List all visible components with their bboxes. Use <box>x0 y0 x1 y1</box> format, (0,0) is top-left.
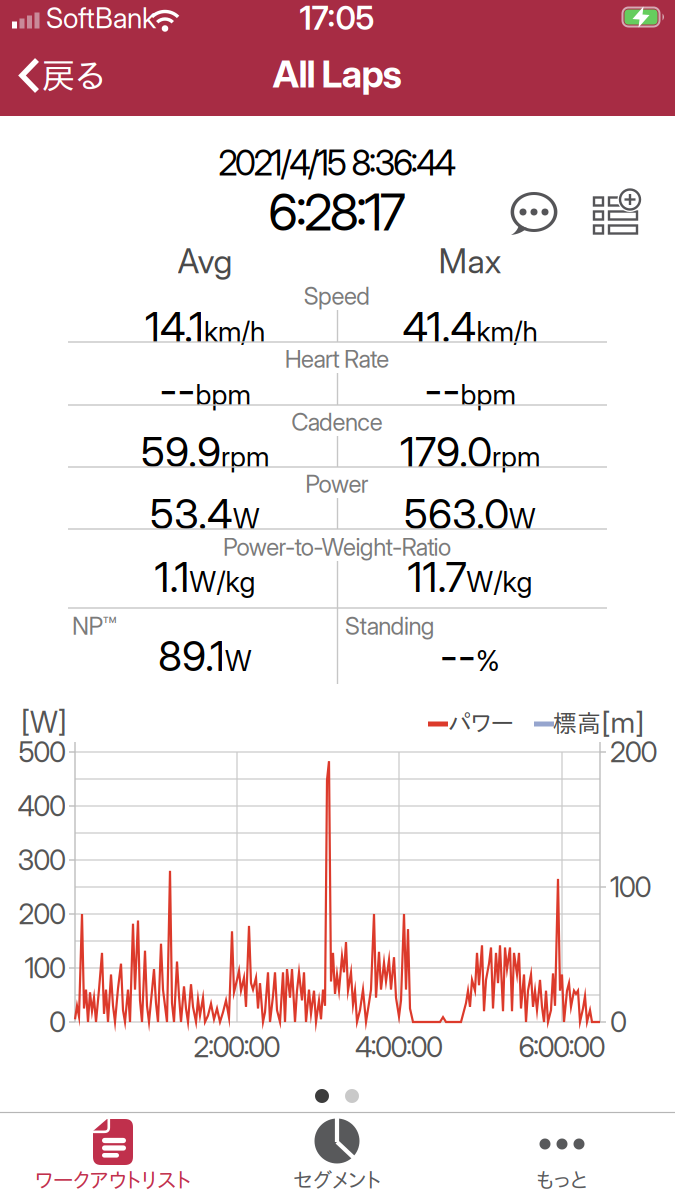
staticText: 標高 <box>553 711 601 735</box>
staticText: Avg <box>177 241 232 281</box>
staticText: 4:00:00 <box>355 1030 443 1063</box>
staticText: 53.4W <box>150 490 260 538</box>
staticText: 89.1W <box>158 632 252 680</box>
staticText: 1.1W/kg <box>154 553 255 601</box>
staticText: Standing <box>345 612 435 640</box>
button[interactable]: セグメント <box>227 1119 447 1195</box>
staticText: --% <box>440 632 500 680</box>
staticText: --bpm <box>424 366 515 414</box>
staticText: 300 <box>18 843 66 876</box>
staticText: All Laps <box>272 52 401 96</box>
staticText: パワー <box>448 711 514 735</box>
staticText: ワークアウトリスト <box>35 1169 191 1191</box>
button[interactable]: Add lap details <box>593 193 643 238</box>
staticText: [m] <box>601 705 644 739</box>
staticText: 6:00:00 <box>518 1030 605 1063</box>
staticText: --bpm <box>159 366 250 414</box>
staticText: Cadence <box>291 408 383 436</box>
staticText: SoftBank <box>46 1 156 34</box>
staticText: 戻る <box>41 58 105 92</box>
staticText: 500 <box>19 735 66 768</box>
staticText: [W] <box>21 705 67 739</box>
staticText: Power-to-Weight-Ratio <box>223 533 451 561</box>
button[interactable]: ワークアウトリスト <box>3 1119 223 1195</box>
staticText: Speed <box>304 282 370 310</box>
staticText: 2021/4/15 8:36:44 <box>218 143 456 183</box>
staticText: 0 <box>49 1005 66 1038</box>
button[interactable]: 戻る <box>11 56 111 96</box>
staticText: セグメント <box>293 1169 381 1191</box>
staticText: 59.9rpm <box>141 428 269 476</box>
button[interactable]: もっと <box>452 1119 672 1195</box>
staticText: 11.7W/kg <box>407 553 532 601</box>
staticText: 563.0W <box>404 490 536 538</box>
staticText: Max <box>438 241 501 281</box>
staticText: 400 <box>18 789 66 822</box>
staticText: 6:28:17 <box>268 182 406 242</box>
staticText: 200 <box>610 735 657 768</box>
staticText: 179.0rpm <box>400 428 540 476</box>
staticText: 41.4km/h <box>402 303 537 351</box>
staticText: NP™ <box>72 612 117 640</box>
staticText: 17:05 <box>299 0 374 37</box>
staticText: 0 <box>610 1005 627 1038</box>
staticText: 200 <box>19 897 66 930</box>
staticText: 14.1km/h <box>145 303 265 351</box>
button[interactable]: Comments <box>511 193 557 235</box>
staticText: Power <box>305 470 369 498</box>
staticText: Heart Rate <box>285 345 389 373</box>
staticText: 100 <box>25 951 66 984</box>
staticText: 2:00:00 <box>193 1030 280 1063</box>
staticText: 100 <box>610 870 651 903</box>
staticText: もっと <box>536 1169 587 1191</box>
